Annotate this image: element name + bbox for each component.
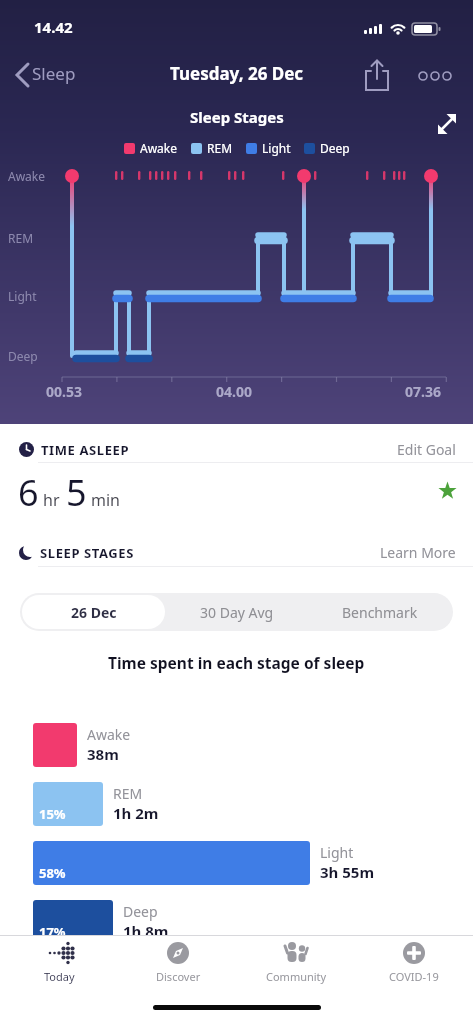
staticText: Community	[266, 969, 327, 984]
staticText: 3h 55m	[320, 862, 375, 882]
staticText: TIME ASLEEP	[41, 441, 130, 459]
staticText: 6	[18, 468, 39, 517]
button[interactable]: 26 Dec	[22, 595, 165, 629]
staticText: Deep	[320, 140, 350, 156]
staticText: 30 Day Avg	[200, 603, 274, 622]
staticText: Deep	[123, 902, 158, 921]
staticText: 17%	[39, 923, 66, 941]
staticText: Edit Goal	[397, 440, 456, 459]
button[interactable]: Sleep	[32, 62, 76, 85]
staticText: Tuesday, 26 Dec	[170, 62, 304, 85]
button[interactable]: 17%	[33, 900, 113, 944]
staticText: 1h 2m	[113, 803, 159, 823]
staticText: Awake	[8, 168, 46, 184]
staticText: hr	[43, 489, 60, 511]
button[interactable]: Discover	[119, 940, 237, 984]
button[interactable]: 30 Day Avg	[165, 595, 308, 629]
button[interactable]	[33, 723, 77, 767]
staticText: Benchmark	[342, 603, 418, 622]
staticText: 1h 8m	[123, 921, 169, 941]
button[interactable]: Benchmark	[308, 595, 451, 629]
staticText: 5	[66, 468, 87, 517]
staticText: COVID-19	[389, 969, 439, 984]
staticText: 58%	[39, 864, 66, 882]
button[interactable]: COVID-19	[355, 940, 473, 984]
staticText: 38m	[87, 744, 119, 764]
staticText: 04.00	[216, 382, 252, 401]
staticText: 15%	[39, 805, 66, 823]
staticText: Today	[44, 969, 75, 984]
staticText: Awake	[140, 140, 178, 156]
staticText: REM	[8, 230, 34, 246]
button[interactable]: 15%	[33, 782, 103, 826]
button[interactable]: TIME ASLEEP	[19, 440, 456, 459]
staticText: Light	[262, 140, 291, 156]
staticText: SLEEP STAGES	[40, 544, 134, 562]
staticText: Light	[320, 843, 354, 862]
staticText: Learn More	[380, 543, 456, 562]
button[interactable]: Community	[237, 940, 355, 984]
button[interactable]: Today	[0, 940, 119, 984]
staticText: Deep	[8, 348, 38, 364]
staticText: min	[91, 489, 120, 511]
staticText: Light	[8, 288, 37, 304]
staticText: REM	[207, 140, 233, 156]
staticText: 07.36	[405, 382, 441, 401]
staticText: Sleep Stages	[190, 107, 284, 127]
staticText: Awake	[87, 725, 131, 744]
button[interactable]: SLEEP STAGES	[19, 543, 456, 562]
staticText: 14.42	[34, 17, 73, 37]
staticText: Discover	[156, 969, 201, 984]
staticText: 26 Dec	[71, 603, 117, 622]
staticText: 00.53	[46, 382, 82, 401]
staticText: Time spent in each stage of sleep	[108, 652, 365, 673]
button[interactable]: 58%	[33, 841, 310, 885]
staticText: REM	[113, 784, 143, 803]
